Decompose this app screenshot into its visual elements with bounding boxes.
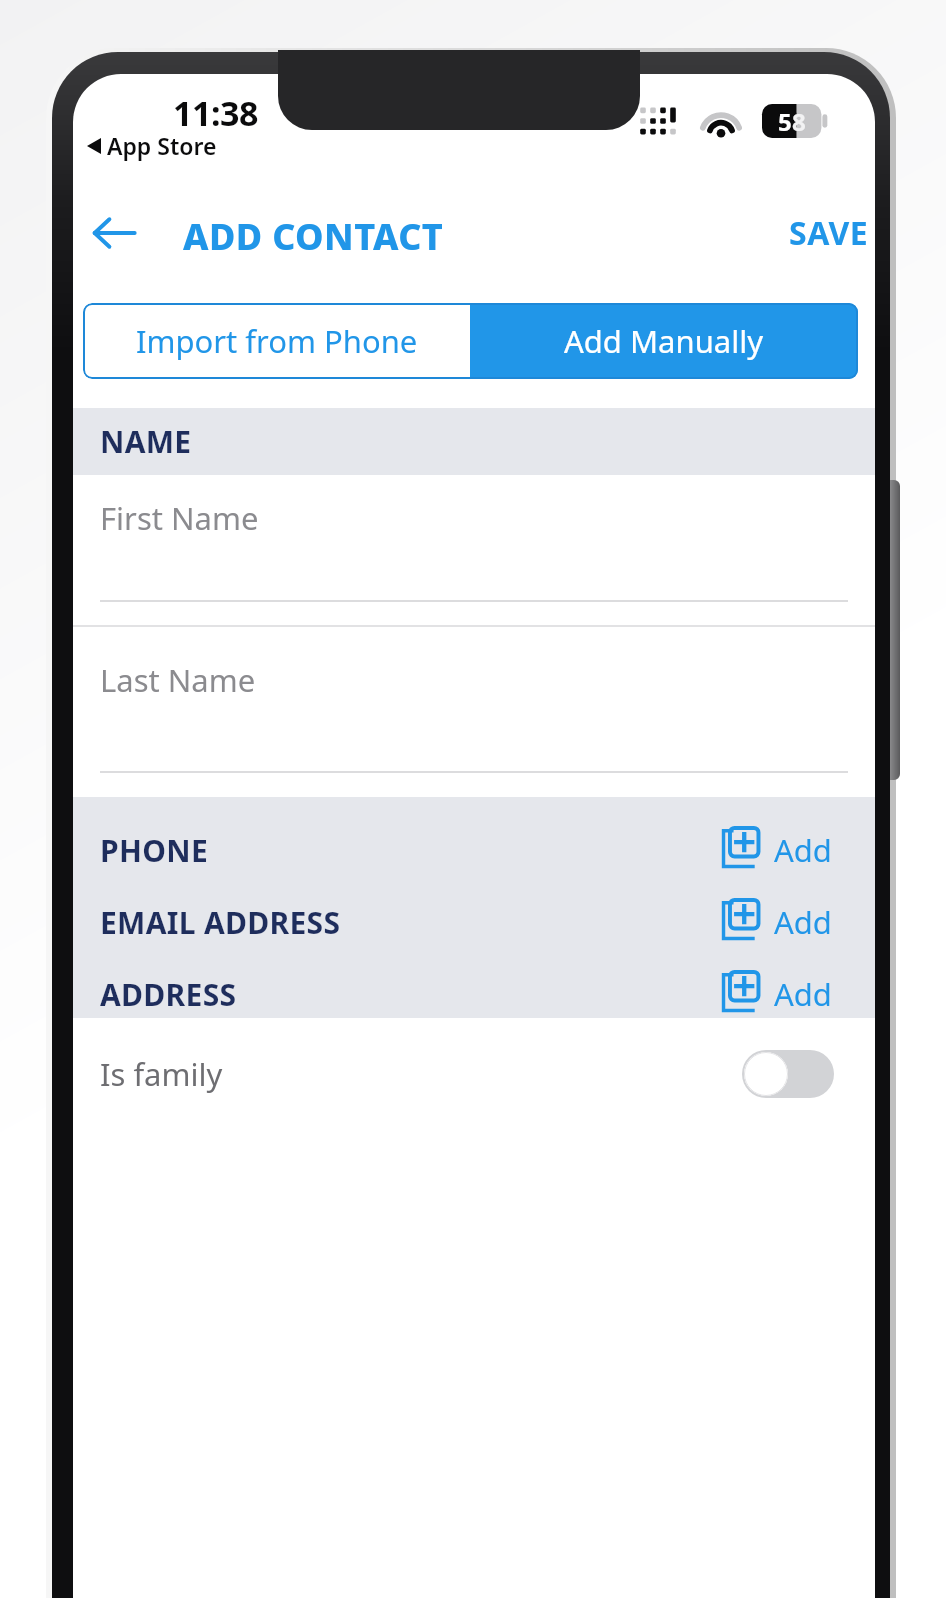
button[interactable]: Import from Phone (83, 303, 470, 379)
staticText: Add Manually (564, 320, 764, 362)
staticText: App Store (107, 130, 217, 161)
staticText: Add (774, 901, 832, 943)
staticText: 11:38 (173, 90, 258, 136)
staticText: Add (774, 973, 832, 1015)
staticText: NAME (100, 421, 192, 462)
button[interactable]: Add (718, 899, 832, 945)
button[interactable]: Add (718, 971, 832, 1017)
staticText: Is family (100, 1053, 223, 1095)
button[interactable]: EMAIL ADDRESS (73, 889, 875, 955)
staticText: SAVE (789, 211, 869, 255)
staticText: Add (774, 829, 832, 871)
staticText: ADDRESS (100, 974, 237, 1015)
button[interactable]: PHONE (73, 817, 875, 883)
button[interactable]: ADDRESS (73, 961, 875, 1027)
button[interactable]: Add Manually (470, 303, 858, 379)
staticText: Import from Phone (136, 320, 418, 362)
staticText: 8 (792, 105, 806, 138)
button[interactable]: SAVE (779, 204, 859, 262)
staticText: PHONE (100, 830, 208, 871)
staticText: First Name (100, 497, 259, 539)
button[interactable]: Is family (73, 1018, 875, 1130)
staticText: ADD CONTACT (183, 212, 444, 261)
button[interactable]: Back (85, 204, 143, 262)
staticText: EMAIL ADDRESS (100, 902, 341, 943)
staticText: 5 (778, 105, 792, 138)
staticText: Last Name (100, 659, 256, 701)
button[interactable]: Is family toggle (742, 1050, 834, 1098)
button[interactable]: Add (718, 827, 832, 873)
